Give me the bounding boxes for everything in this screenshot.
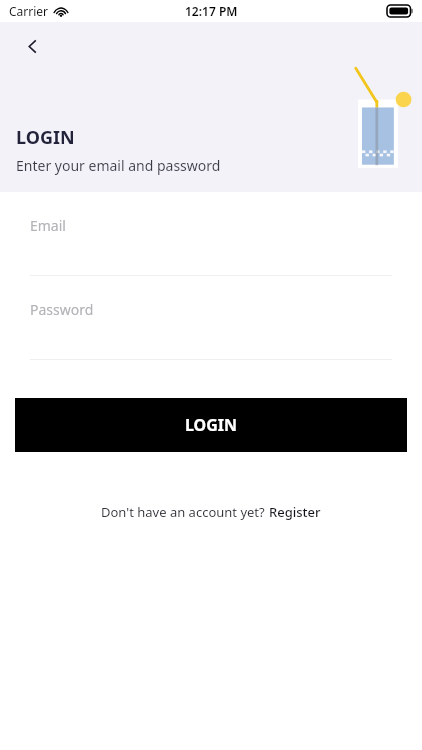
staticText: Don't have an account yet? bbox=[101, 503, 269, 521]
staticText: 12:17 PM bbox=[185, 3, 238, 19]
staticText: LOGIN bbox=[16, 125, 75, 150]
button[interactable]: Password bbox=[30, 300, 392, 360]
staticText: LOGIN bbox=[185, 414, 238, 436]
staticText: Email bbox=[30, 216, 66, 235]
button[interactable]: Don't have an account yet? bbox=[101, 503, 321, 521]
button[interactable]: LOGIN bbox=[15, 398, 407, 452]
button[interactable]: Email bbox=[30, 216, 392, 276]
staticText: Register bbox=[269, 503, 321, 521]
staticText: Enter your email and password bbox=[16, 156, 221, 175]
button[interactable]: Back bbox=[12, 26, 52, 66]
staticText: Carrier bbox=[9, 3, 49, 19]
staticText: Password bbox=[30, 300, 94, 319]
